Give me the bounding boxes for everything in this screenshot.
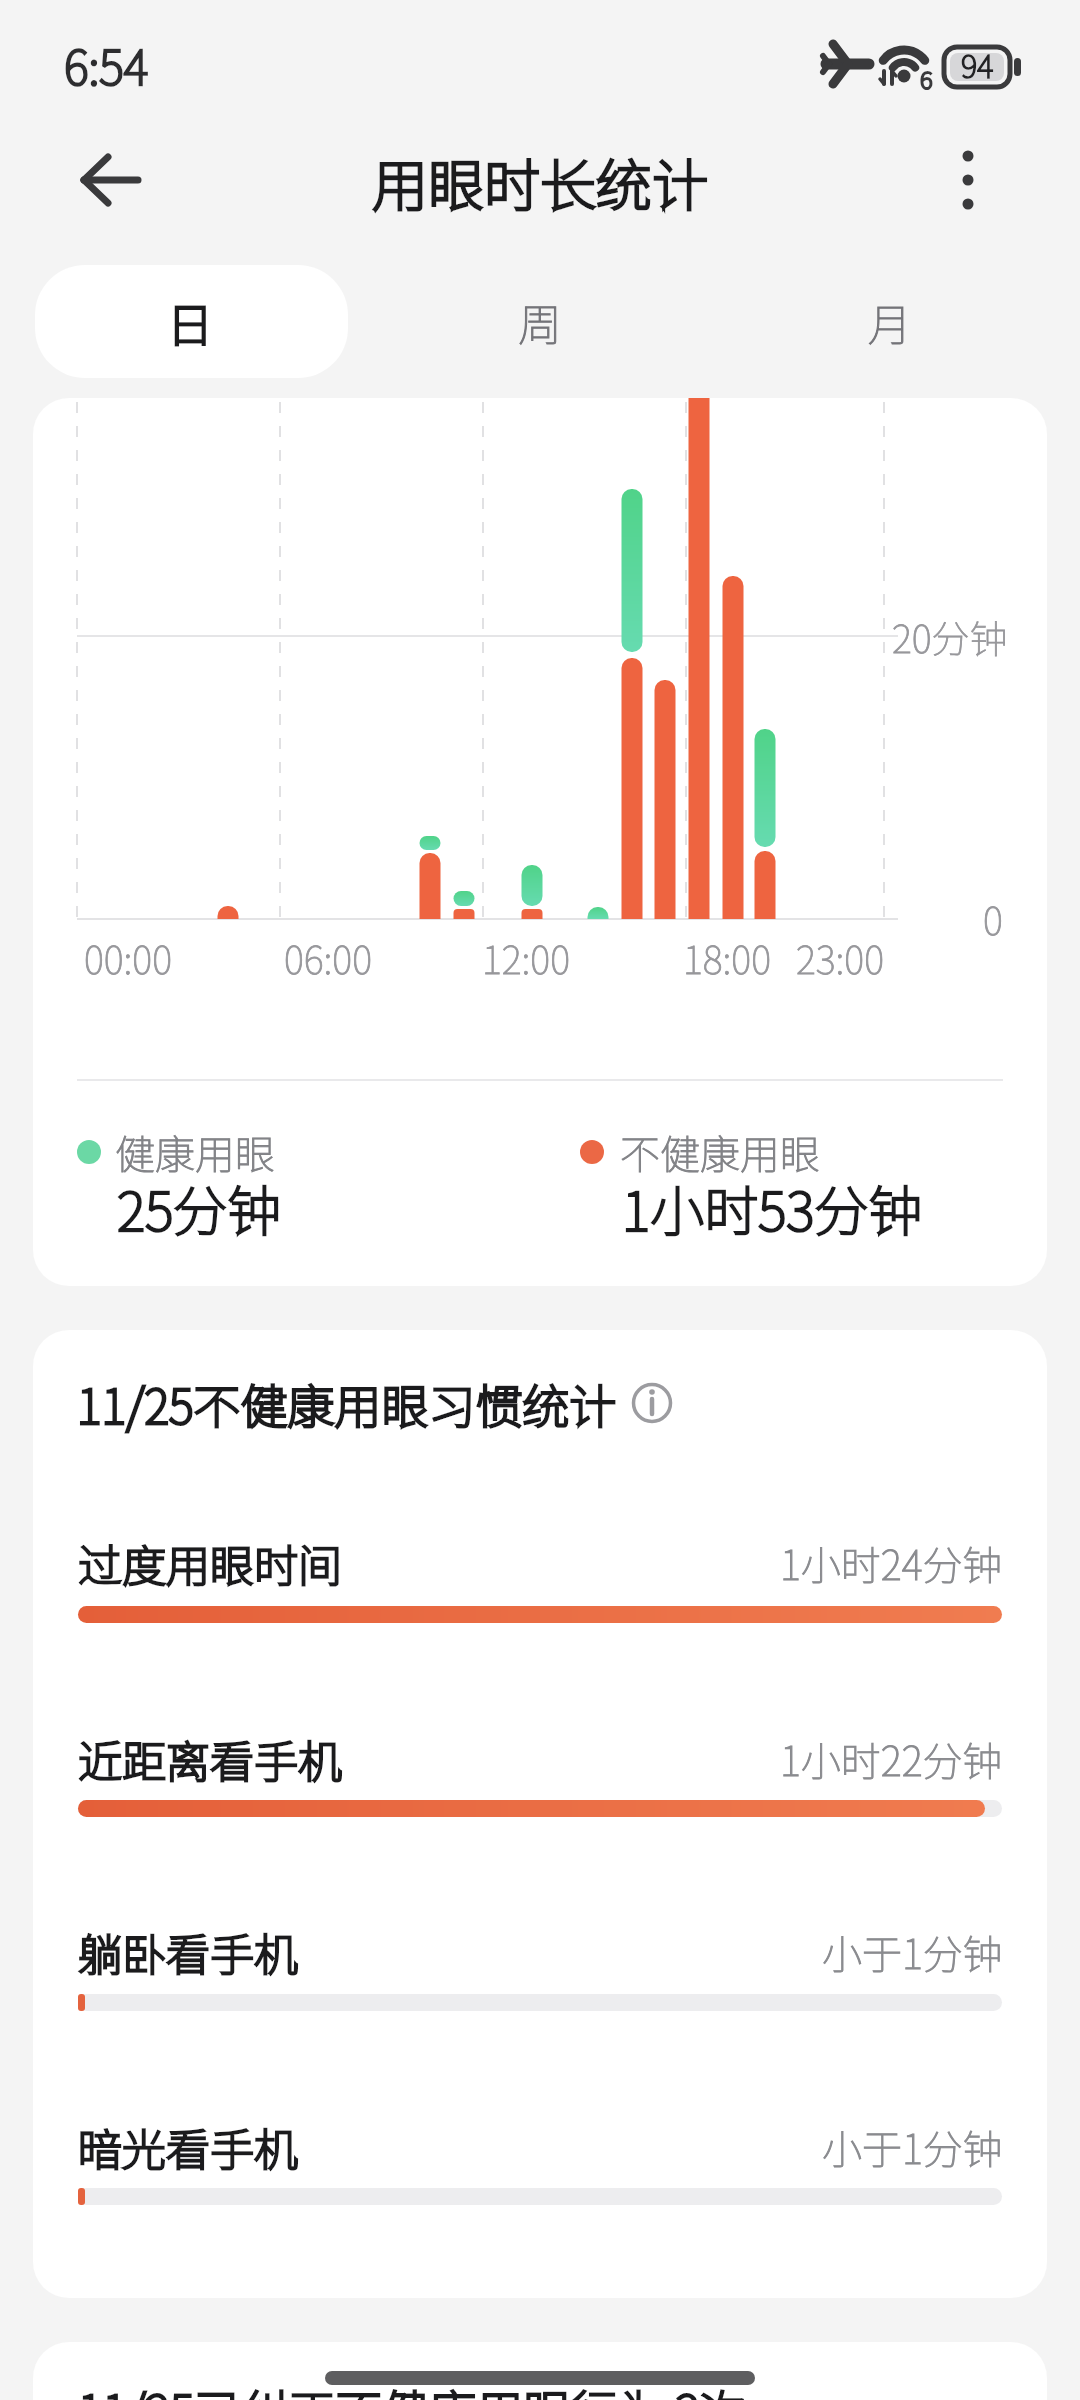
staticText: 小于1分钟 [822,1923,1003,1981]
staticText: 小于1分钟 [822,2118,1003,2176]
staticText: 23:00 [796,930,884,985]
button[interactable] [370,265,710,378]
staticText: 躺卧看手机 [78,1920,298,1984]
staticText: 小于1分钟 [822,1923,1003,1981]
staticText: 不健康用眼 [620,1123,820,1181]
staticText: 11/25不健康用眼习惯统计 [77,1369,617,1437]
button[interactable] [50,1696,1030,1846]
staticText: 06:00 [284,930,372,985]
staticText: 0 [983,891,1003,946]
staticText: 1小时22分钟 [780,1730,1003,1788]
staticText: 健康用眼 [115,1123,275,1181]
staticText: 25分钟 [117,1168,282,1246]
button[interactable] [60,130,160,230]
staticText: 11/25不健康用眼习惯统计 [77,1369,617,1437]
staticText: 12:00 [482,930,570,985]
staticText: 25分钟 [117,1168,282,1246]
staticText: 小于1分钟 [822,2118,1003,2176]
staticText: 20分钟 [892,609,1008,664]
staticText: 6:54 [64,30,149,98]
button[interactable] [35,265,348,378]
staticText: 暗光看手机 [78,2115,298,2179]
staticText: 1小时53分钟 [622,1168,923,1246]
staticText: 23:00 [796,930,884,985]
staticText: 健康用眼 [115,1123,275,1181]
button[interactable] [50,1500,1030,1650]
staticText: 近距离看手机 [78,1727,342,1791]
staticText: 6 [920,61,933,96]
staticText: 日 [167,289,213,356]
staticText: 不健康用眼 [620,1123,820,1181]
staticText: 月 [868,290,912,354]
staticText: 18:00 [683,930,771,985]
staticText: 18:00 [683,930,771,985]
staticText: 1小时53分钟 [622,1168,923,1246]
staticText: 11/25已纠正不健康用眼行为 3次 [78,2375,747,2400]
staticText: 暗光看手机 [78,2115,298,2179]
button[interactable] [50,2084,1030,2234]
staticText: 00:00 [84,930,172,985]
staticText: 0 [983,891,1003,946]
staticText: 日 [167,289,213,356]
button[interactable] [918,130,1018,230]
staticText: 周 [518,290,562,354]
staticText: 20分钟 [892,609,1008,664]
staticText: 躺卧看手机 [78,1920,298,1984]
button[interactable] [50,1890,1030,2040]
staticText: 6 [920,61,933,96]
staticText: 近距离看手机 [78,1727,342,1791]
staticText: 06:00 [284,930,372,985]
staticText: 12:00 [482,930,570,985]
staticText: 用眼时长统计 [372,141,708,222]
staticText: 6:54 [64,30,149,98]
staticText: 94 [961,42,994,87]
staticText: 11/25已纠正不健康用眼行为 3次 [78,2375,747,2400]
staticText: 过度用眼时间 [78,1531,342,1595]
staticText: 94 [961,42,994,87]
staticText: 00:00 [84,930,172,985]
button[interactable] [720,265,1045,378]
staticText: 1小时24分钟 [780,1534,1003,1592]
staticText: 过度用眼时间 [78,1531,342,1595]
button[interactable] [624,1375,680,1431]
staticText: 1小时22分钟 [780,1730,1003,1788]
staticText: 1小时24分钟 [780,1534,1003,1592]
staticText: 月 [868,290,912,354]
staticText: 周 [518,290,562,354]
staticText: 用眼时长统计 [372,141,708,222]
